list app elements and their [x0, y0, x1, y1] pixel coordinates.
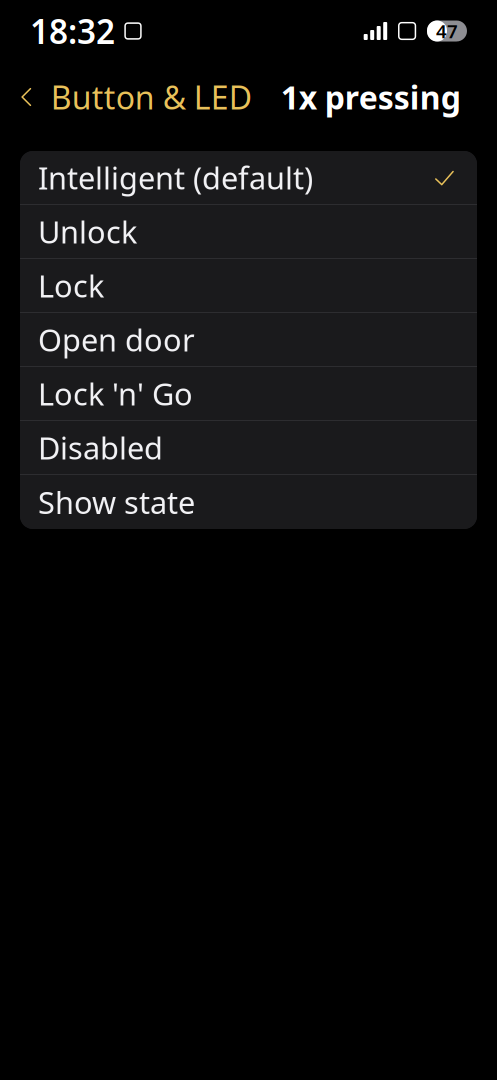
- button[interactable]: Disabled: [20, 421, 477, 475]
- button[interactable]: Lock 'n' Go: [20, 367, 477, 421]
- staticText: Unlock: [38, 211, 137, 252]
- staticText: 1x pressing: [281, 76, 461, 118]
- staticText: Open door: [38, 319, 195, 360]
- button[interactable]: Open door: [20, 313, 477, 367]
- staticText: Button & LED: [51, 76, 252, 118]
- staticText: Show state: [38, 482, 195, 522]
- staticText: 47: [436, 19, 458, 43]
- staticText: Lock 'n' Go: [38, 373, 193, 414]
- staticText: Intelligent (default): [38, 157, 313, 198]
- staticText: Disabled: [38, 427, 163, 468]
- button[interactable]: Unlock: [20, 205, 477, 259]
- button[interactable]: Show state: [20, 475, 477, 529]
- staticText: 18:32: [30, 9, 115, 53]
- button[interactable]: Lock: [20, 259, 477, 313]
- button[interactable]: Intelligent (default): [20, 151, 477, 205]
- button[interactable]: Button & LED: [0, 68, 252, 126]
- staticText: Lock: [38, 265, 104, 306]
